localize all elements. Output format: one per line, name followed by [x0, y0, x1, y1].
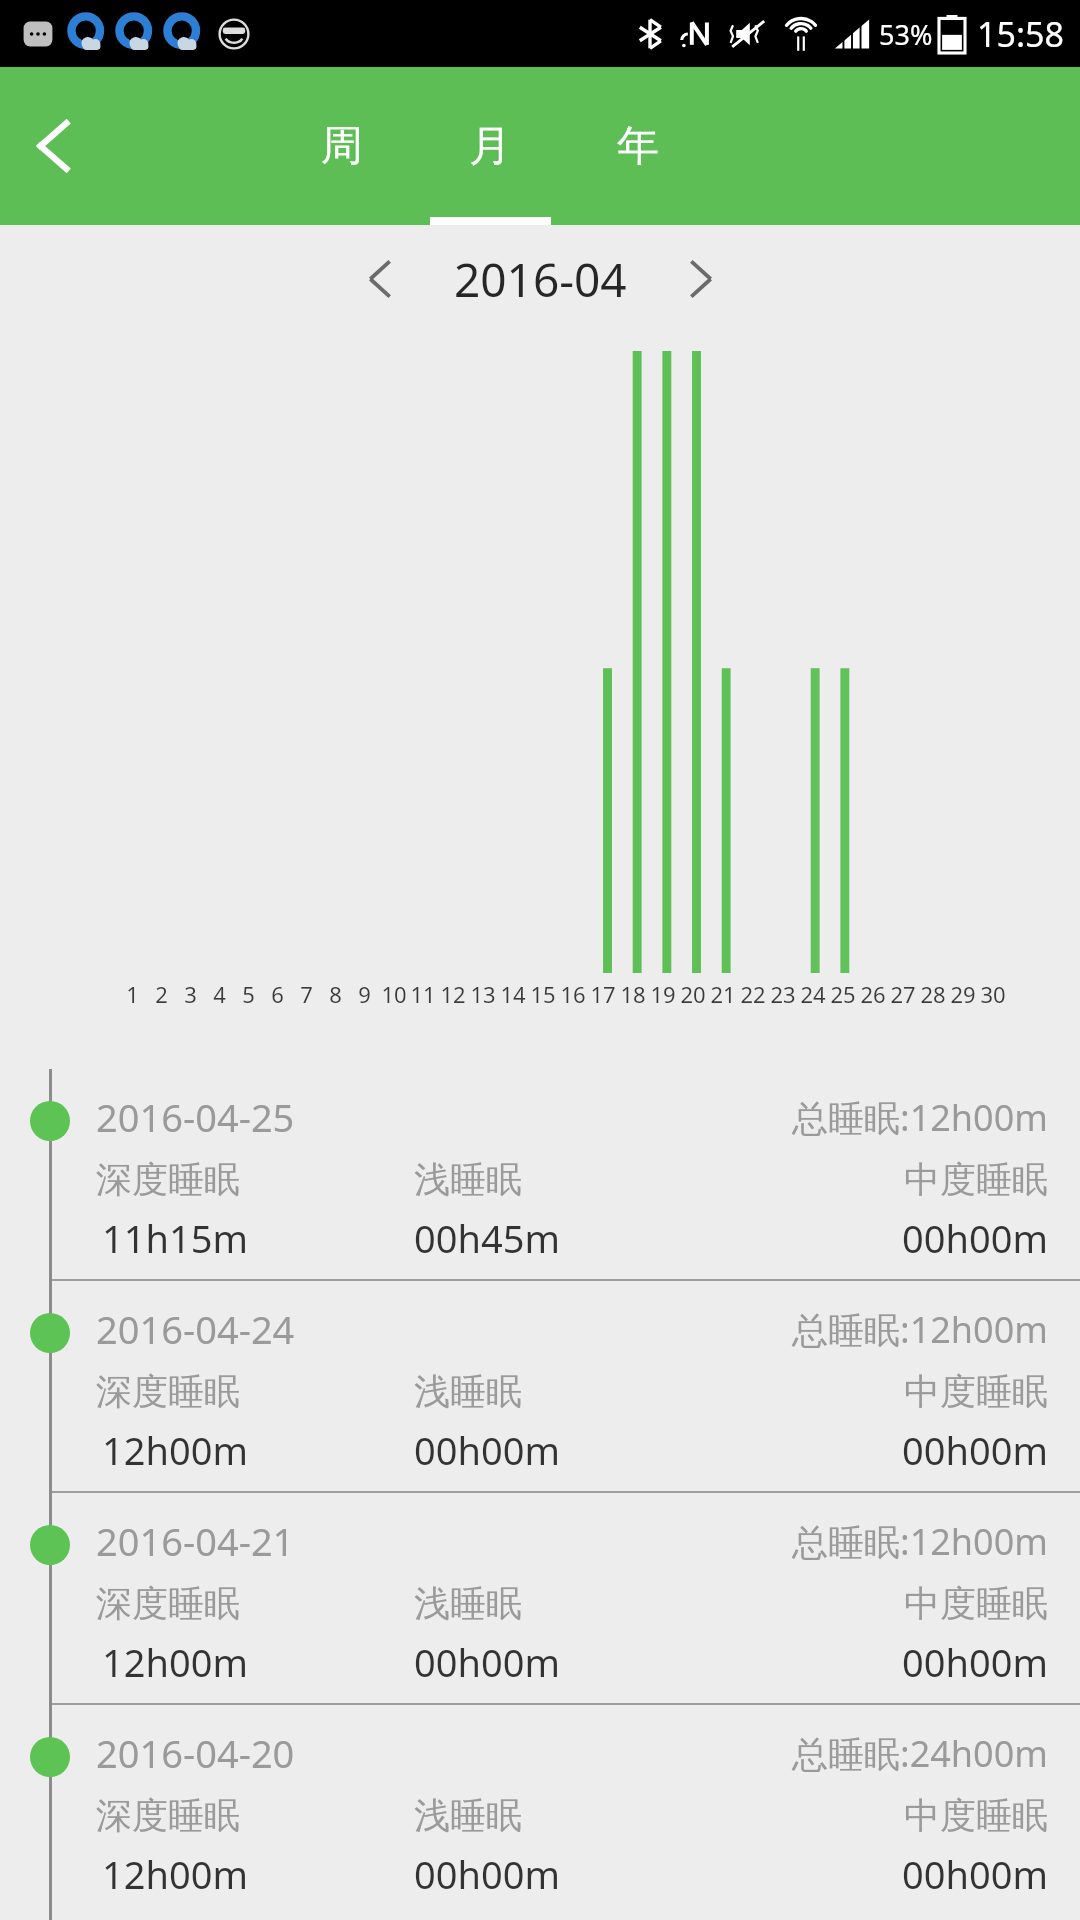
- staticText: 10: [381, 979, 407, 1009]
- staticText: 13: [470, 979, 496, 1009]
- button[interactable]: Back: [0, 91, 110, 201]
- button[interactable]: 2016-04-20: [0, 1705, 1080, 1917]
- staticText: 00h45m: [414, 1212, 560, 1264]
- staticText: 6: [271, 979, 284, 1009]
- staticText: 00h00m: [902, 1212, 1048, 1264]
- staticText: 30: [980, 979, 1006, 1009]
- staticText: 5: [242, 979, 255, 1009]
- staticText: 12h00m: [102, 1636, 248, 1688]
- staticText: 总睡眠:12h00m: [792, 1517, 1048, 1566]
- staticText: 2016-04: [454, 248, 627, 311]
- staticText: 月: [469, 120, 511, 173]
- staticText: 8: [329, 979, 342, 1009]
- button[interactable]: Previous month: [332, 231, 428, 327]
- staticText: 20: [680, 979, 706, 1009]
- staticText: 16: [560, 979, 586, 1009]
- staticText: 1: [126, 979, 139, 1009]
- button[interactable]: 2016-04-21: [0, 1493, 1080, 1705]
- button[interactable]: 月: [416, 67, 564, 225]
- staticText: 浅睡眠: [414, 1369, 522, 1414]
- button[interactable]: Next month: [653, 231, 749, 327]
- staticText: 15: [530, 979, 556, 1009]
- staticText: 25: [830, 979, 856, 1009]
- staticText: 年: [617, 120, 659, 173]
- staticText: 00h00m: [414, 1636, 560, 1688]
- staticText: 29: [950, 979, 976, 1009]
- staticText: 浅睡眠: [414, 1157, 522, 1202]
- staticText: 14: [500, 979, 526, 1009]
- staticText: 11: [410, 979, 436, 1009]
- staticText: 27: [890, 979, 916, 1009]
- staticText: 2016-04-25: [96, 1091, 295, 1143]
- staticText: 中度睡眠: [904, 1793, 1048, 1838]
- staticText: 12h00m: [102, 1848, 248, 1900]
- button[interactable]: 2016-04-25: [0, 1069, 1080, 1281]
- staticText: 中度睡眠: [904, 1581, 1048, 1626]
- staticText: 2: [155, 979, 168, 1009]
- staticText: 中度睡眠: [904, 1157, 1048, 1202]
- staticText: 深度睡眠: [96, 1793, 240, 1838]
- staticText: 深度睡眠: [96, 1369, 240, 1414]
- staticText: 2016-04-20: [96, 1727, 295, 1779]
- staticText: 23: [770, 979, 796, 1009]
- staticText: 22: [740, 979, 766, 1009]
- staticText: 总睡眠:12h00m: [792, 1093, 1048, 1142]
- staticText: 中度睡眠: [904, 1369, 1048, 1414]
- staticText: 53%: [879, 16, 933, 53]
- staticText: 18: [620, 979, 646, 1009]
- staticText: 28: [920, 979, 946, 1009]
- staticText: 2016-04-21: [96, 1515, 295, 1567]
- staticText: 9: [358, 979, 371, 1009]
- staticText: 11h15m: [102, 1212, 248, 1264]
- staticText: 4: [213, 979, 226, 1009]
- staticText: 总睡眠:24h00m: [792, 1729, 1048, 1778]
- staticText: 12h00m: [102, 1424, 248, 1476]
- button[interactable]: 年: [564, 67, 712, 225]
- staticText: 00h00m: [902, 1636, 1048, 1688]
- staticText: 深度睡眠: [96, 1581, 240, 1626]
- staticText: 00h00m: [414, 1848, 560, 1900]
- staticText: 总睡眠:12h00m: [792, 1305, 1048, 1354]
- staticText: 26: [860, 979, 886, 1009]
- staticText: 浅睡眠: [414, 1793, 522, 1838]
- staticText: 19: [650, 979, 676, 1009]
- staticText: 7: [300, 979, 313, 1009]
- staticText: 17: [590, 979, 616, 1009]
- staticText: 深度睡眠: [96, 1157, 240, 1202]
- staticText: 24: [800, 979, 826, 1009]
- staticText: 00h00m: [902, 1848, 1048, 1900]
- staticText: 2016-04-24: [96, 1303, 295, 1355]
- staticText: 00h00m: [902, 1424, 1048, 1476]
- staticText: 3: [184, 979, 197, 1009]
- staticText: 00h00m: [414, 1424, 560, 1476]
- staticText: 浅睡眠: [414, 1581, 522, 1626]
- button[interactable]: 周: [268, 67, 416, 225]
- staticText: 15:58: [977, 11, 1064, 57]
- button[interactable]: 2016-04-24: [0, 1281, 1080, 1493]
- staticText: 12: [440, 979, 466, 1009]
- staticText: 21: [710, 979, 736, 1009]
- staticText: 周: [321, 120, 363, 173]
